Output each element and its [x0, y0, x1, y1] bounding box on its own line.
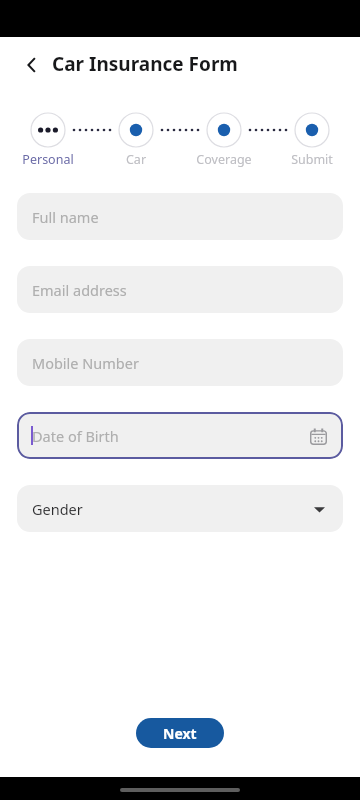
button[interactable]: Gender — [17, 485, 343, 532]
button[interactable]: Submit — [268, 105, 356, 167]
staticText: Mobile Number — [32, 353, 139, 373]
button[interactable]: Full name — [17, 193, 343, 240]
button[interactable]: Date of Birth — [17, 412, 343, 459]
button[interactable]: Next — [136, 718, 224, 748]
staticText: Full name — [32, 207, 99, 227]
button[interactable]: Email address — [17, 266, 343, 313]
staticText: Car Insurance Form — [52, 51, 238, 77]
staticText: Date of Birth — [32, 426, 119, 446]
staticText: Car — [92, 151, 180, 168]
staticText: Next — [163, 724, 197, 743]
staticText: Email address — [32, 280, 127, 300]
button[interactable]: Personal — [4, 105, 92, 167]
staticText: Submit — [268, 151, 356, 168]
button[interactable]: Car — [92, 105, 180, 167]
staticText: Coverage — [180, 151, 268, 168]
staticText: Personal — [4, 151, 92, 168]
button[interactable]: Back — [14, 47, 50, 83]
button[interactable]: Pick date — [303, 421, 333, 451]
button[interactable]: Coverage — [180, 105, 268, 167]
other: Open gender options — [305, 495, 333, 523]
button[interactable]: Mobile Number — [17, 339, 343, 386]
staticText: Gender — [32, 499, 83, 519]
